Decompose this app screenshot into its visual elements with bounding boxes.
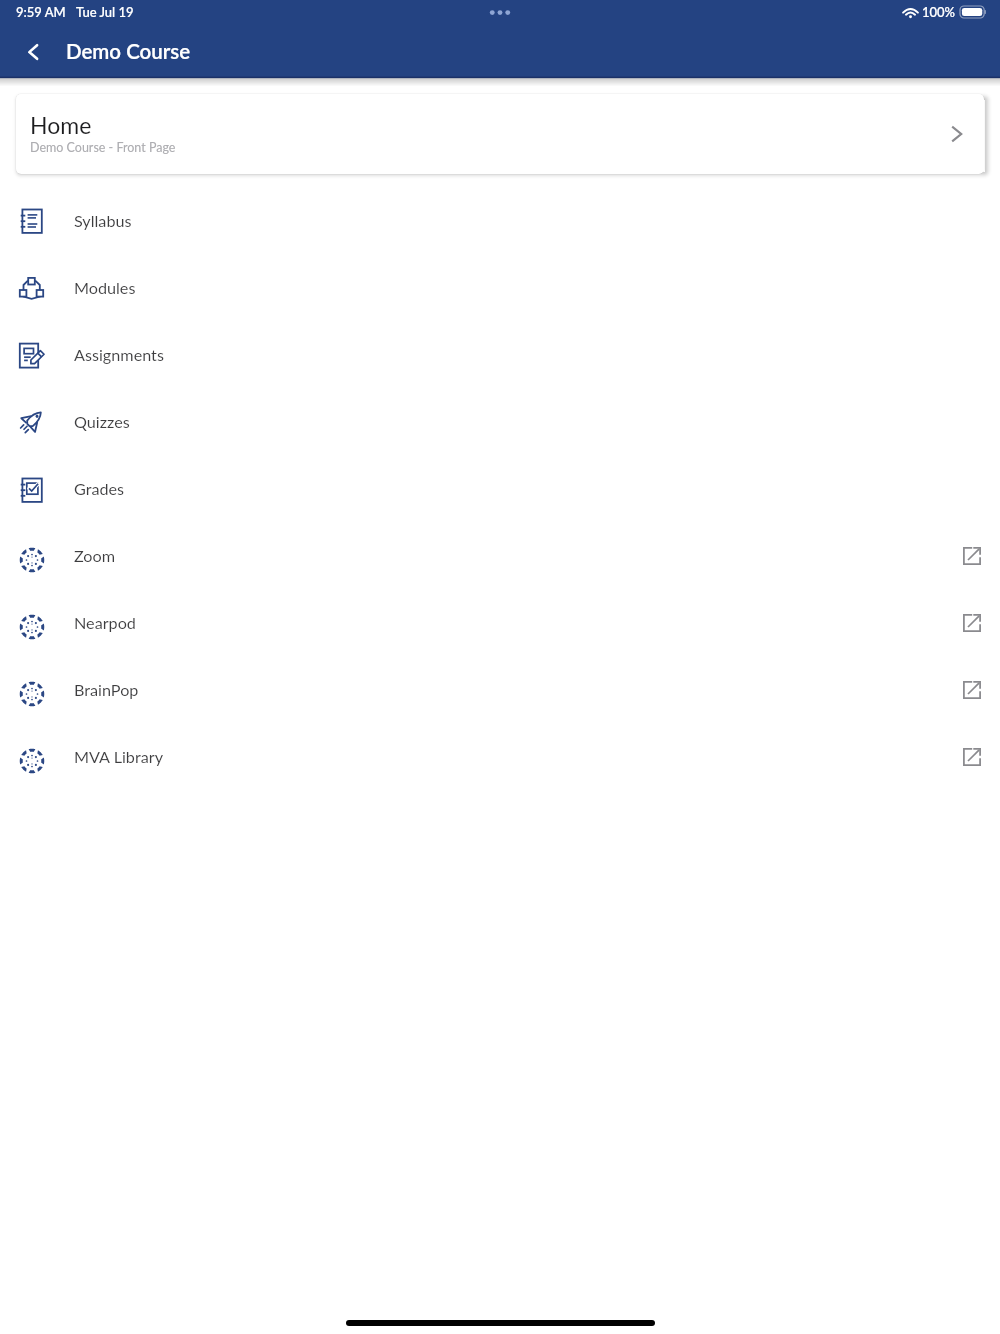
button[interactable]: Navigate back	[0, 26, 58, 78]
button[interactable]: Zoom	[0, 522, 1000, 589]
button[interactable]: Grades	[0, 455, 1000, 522]
staticText: Grades	[74, 479, 125, 498]
button[interactable]: Nearpod	[0, 589, 1000, 656]
staticText: Tue Jul 19	[76, 4, 134, 20]
staticText: Demo Course	[66, 39, 191, 64]
staticText: Demo Course - Front Page	[30, 140, 176, 155]
button[interactable]: Assignments	[0, 321, 1000, 388]
button[interactable]: BrainPop	[0, 656, 1000, 723]
staticText: Assignments	[74, 345, 164, 364]
button[interactable]: MVA Library	[0, 723, 1000, 790]
staticText: Quizzes	[74, 412, 130, 431]
staticText: Nearpod	[74, 613, 136, 632]
button[interactable]: Modules	[0, 254, 1000, 321]
staticText: BrainPop	[74, 680, 139, 699]
staticText: MVA Library	[74, 747, 163, 766]
staticText: Home	[30, 111, 92, 139]
staticText: 9:59 AM	[16, 4, 66, 20]
staticText: 100%	[922, 4, 956, 20]
button[interactable]: Home	[16, 94, 984, 174]
other: Opens in external app	[958, 676, 986, 704]
button[interactable]: Syllabus	[0, 187, 1000, 254]
other: Opens in external app	[958, 743, 986, 771]
button[interactable]: Quizzes	[0, 388, 1000, 455]
staticText: Zoom	[74, 546, 116, 565]
other: Opens in external app	[958, 542, 986, 570]
staticText: Modules	[74, 278, 136, 297]
other: Opens in external app	[958, 609, 986, 637]
staticText: Syllabus	[74, 211, 132, 230]
